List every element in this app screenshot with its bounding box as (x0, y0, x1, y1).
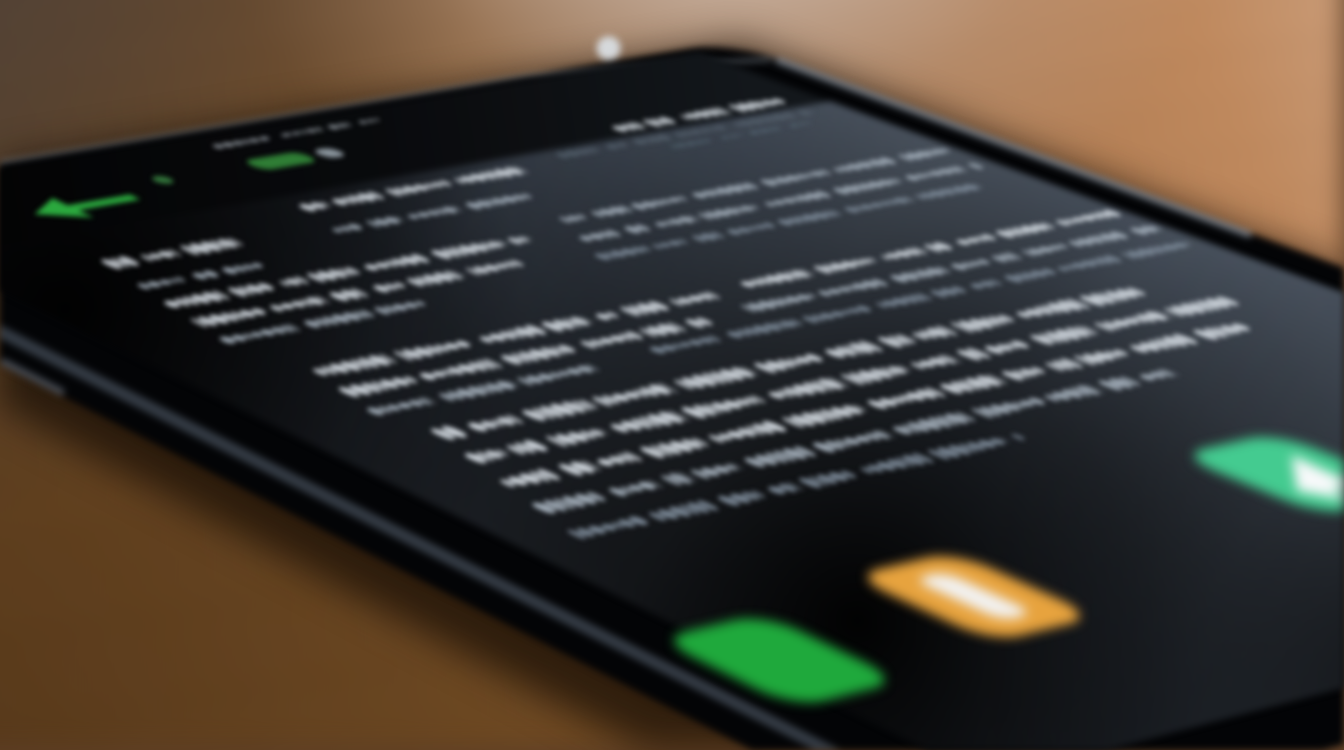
button[interactable]: Messaging app on a phone resting on a wo… (0, 0, 1344, 750)
